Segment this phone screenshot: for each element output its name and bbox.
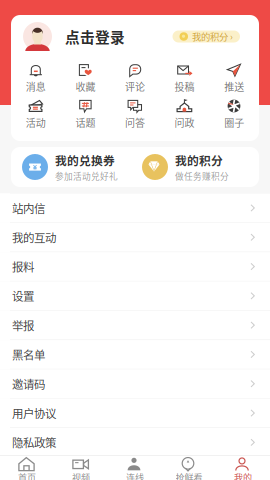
- staticText: 做任务赚积分: [175, 170, 229, 182]
- button[interactable]: 我的积分 ›: [172, 30, 240, 42]
- button[interactable]: 站内信: [0, 194, 270, 223]
- button[interactable]: 视频: [54, 455, 108, 480]
- button[interactable]: 点击登录: [23, 22, 125, 51]
- staticText: 我的积分 ›: [192, 30, 233, 43]
- button[interactable]: 圈子: [209, 94, 259, 130]
- staticText: 设置: [12, 287, 34, 304]
- button[interactable]: 推送: [209, 58, 259, 94]
- button[interactable]: 收藏: [61, 58, 110, 94]
- staticText: 视频: [72, 471, 90, 480]
- staticText: 抢鲜看: [175, 471, 202, 480]
- button[interactable]: 问政: [160, 94, 209, 130]
- staticText: 推送: [224, 79, 244, 94]
- staticText: 黑名单: [12, 346, 45, 363]
- staticText: 举报: [12, 317, 34, 333]
- button[interactable]: 首页: [0, 455, 54, 480]
- button[interactable]: 投稿: [160, 58, 209, 94]
- button[interactable]: 抢鲜看: [162, 455, 216, 480]
- staticText: 站内信: [12, 200, 45, 216]
- button[interactable]: 隐私政策: [0, 428, 270, 457]
- staticText: 连线: [126, 471, 144, 480]
- staticText: 投稿: [175, 79, 195, 94]
- button[interactable]: 我的兑换券: [11, 147, 135, 187]
- button[interactable]: 设置: [0, 281, 270, 311]
- button[interactable]: 问答: [110, 94, 160, 130]
- staticText: 邀请码: [12, 375, 45, 392]
- staticText: 问答: [125, 115, 145, 130]
- button[interactable]: 评论: [110, 58, 160, 94]
- button[interactable]: 话题: [61, 94, 110, 130]
- staticText: 用户协议: [12, 405, 56, 421]
- staticText: 我的互动: [12, 229, 56, 245]
- button[interactable]: 我的积分: [135, 147, 259, 187]
- button[interactable]: 举报: [0, 311, 270, 340]
- staticText: 隐私政策: [12, 434, 56, 451]
- button[interactable]: 用户协议: [0, 399, 270, 428]
- staticText: 参加活动兑好礼: [55, 170, 118, 182]
- staticText: 我的兑换券: [55, 152, 115, 169]
- button[interactable]: 活动: [11, 94, 61, 130]
- staticText: 问政: [175, 115, 195, 130]
- button[interactable]: 黑名单: [0, 340, 270, 369]
- button[interactable]: 邀请码: [0, 369, 270, 399]
- staticText: 报料: [12, 258, 34, 275]
- staticText: 首页: [18, 471, 36, 480]
- staticText: 消息: [26, 79, 46, 94]
- button[interactable]: 消息: [11, 58, 61, 94]
- button[interactable]: 我的: [216, 455, 270, 480]
- staticText: 话题: [75, 115, 95, 130]
- button[interactable]: 连线: [108, 455, 162, 480]
- button[interactable]: 我的互动: [0, 223, 270, 252]
- staticText: 收藏: [75, 79, 95, 94]
- button[interactable]: 报料: [0, 252, 270, 281]
- staticText: 活动: [26, 115, 46, 130]
- staticText: 点击登录: [65, 26, 125, 47]
- staticText: 我的积分: [175, 152, 223, 169]
- staticText: 评论: [125, 79, 145, 94]
- staticText: 圈子: [224, 115, 244, 130]
- staticText: 我的: [234, 471, 252, 480]
